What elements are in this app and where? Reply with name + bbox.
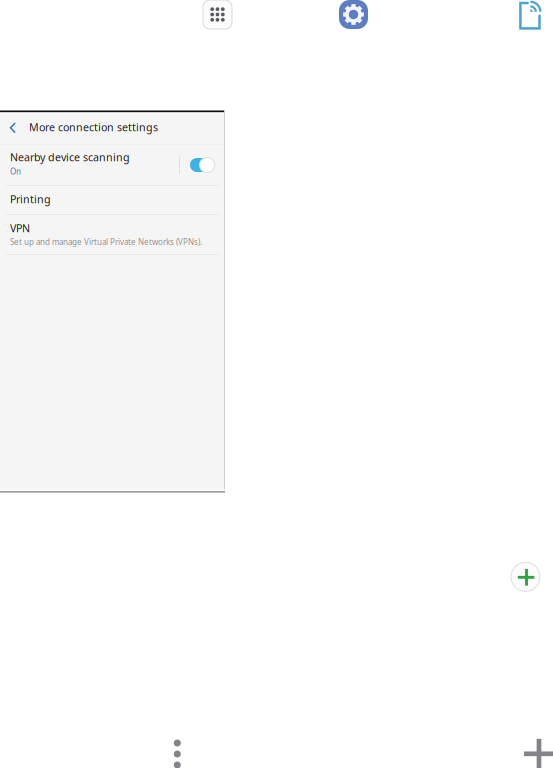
staticText: Printing bbox=[10, 192, 51, 206]
button[interactable]: Settings bbox=[339, 0, 368, 29]
button[interactable]: More options bbox=[174, 739, 181, 768]
staticText: Set up and manage Virtual Private Networ… bbox=[10, 237, 202, 247]
button[interactable]: Add bbox=[511, 562, 540, 591]
button[interactable]: Nearby device scanning bbox=[0, 145, 225, 185]
staticText: Nearby device scanning bbox=[10, 150, 130, 164]
staticText: More connection settings bbox=[29, 120, 158, 134]
button[interactable]: Add bbox=[524, 739, 553, 768]
button[interactable]: Printing bbox=[519, 0, 542, 30]
button[interactable]: VPN bbox=[0, 214, 225, 254]
button[interactable]: Printing bbox=[0, 185, 225, 214]
staticText: On bbox=[10, 166, 21, 177]
button[interactable]: Apps bbox=[203, 0, 232, 29]
staticText: VPN bbox=[10, 221, 30, 235]
button[interactable]: More connection settings bbox=[0, 112, 225, 144]
